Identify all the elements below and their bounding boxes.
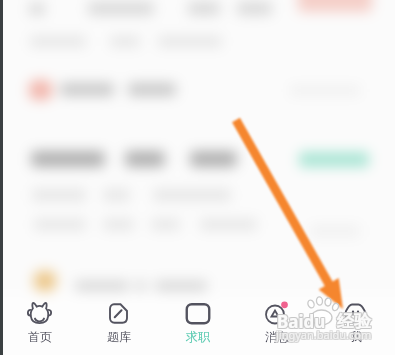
staticText: 我	[350, 329, 362, 344]
button[interactable]: 我	[316, 290, 395, 355]
staticText: jingyan.baidu.com	[275, 326, 371, 341]
staticText: 经验	[338, 312, 372, 333]
staticText: jingyan.baidu.com	[275, 327, 371, 342]
staticText: jingyan.baidu.com	[277, 328, 373, 343]
button[interactable]: 求职	[158, 290, 237, 355]
staticText: Baidu	[277, 311, 326, 334]
staticText: Baidu	[277, 310, 326, 333]
staticText: jingyan.baidu.com	[277, 326, 373, 341]
staticText: Baidu	[277, 309, 326, 332]
staticText: jingyan.baidu.com	[276, 326, 372, 341]
staticText: 经验	[338, 310, 372, 331]
staticText: Baidu	[276, 309, 325, 332]
staticText: 经验	[336, 312, 370, 333]
button[interactable]: 题库	[79, 290, 158, 355]
staticText: jingyan.baidu.com	[275, 328, 371, 343]
staticText: jingyan.baidu.com	[277, 327, 373, 342]
staticText: 题库	[107, 329, 131, 344]
staticText: Baidu	[276, 310, 325, 333]
staticText: 经验	[337, 311, 371, 332]
staticText: jingyan.baidu.com	[276, 327, 372, 342]
staticText: Baidu	[278, 310, 327, 333]
staticText: 经验	[336, 310, 370, 331]
button[interactable]: 首页	[0, 290, 79, 355]
staticText: Baidu	[278, 309, 327, 332]
button[interactable]: 消息	[237, 290, 316, 355]
staticText: 消息	[265, 329, 289, 344]
staticText: Baidu	[278, 311, 327, 334]
staticText: Baidu	[276, 311, 325, 334]
staticText: 首页	[28, 329, 52, 344]
staticText: jingyan.baidu.com	[276, 328, 372, 343]
staticText: 求职	[186, 329, 210, 344]
staticText: 经验	[338, 311, 372, 332]
staticText: 经验	[337, 310, 371, 331]
staticText: 经验	[337, 312, 371, 333]
staticText: 经验	[336, 311, 370, 332]
